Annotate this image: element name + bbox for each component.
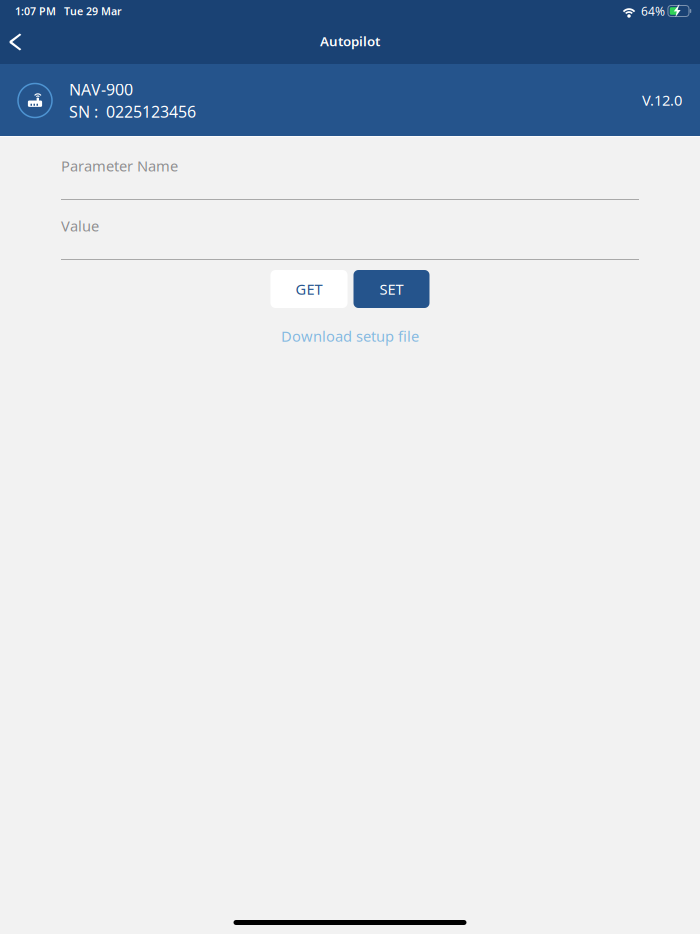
staticText: V.12.0 (642, 90, 682, 110)
staticText: Download setup file (281, 326, 419, 346)
staticText: NAV-900 (69, 79, 133, 100)
staticText: Autopilot (320, 32, 380, 50)
button[interactable]: SET (353, 270, 429, 308)
staticText: 1:07 PM (15, 4, 56, 18)
button[interactable]: Download setup file (281, 323, 419, 349)
button[interactable]: Back (0, 22, 44, 64)
staticText: Tue 29 Mar (64, 4, 122, 18)
staticText: SET (379, 279, 403, 299)
staticText: Parameter Name (61, 156, 178, 175)
staticText: GET (295, 279, 322, 299)
staticText: 64% (641, 3, 665, 19)
staticText: Value (61, 216, 99, 235)
button[interactable]: GET (270, 270, 347, 308)
staticText: SN : 0225123456 (69, 101, 196, 122)
